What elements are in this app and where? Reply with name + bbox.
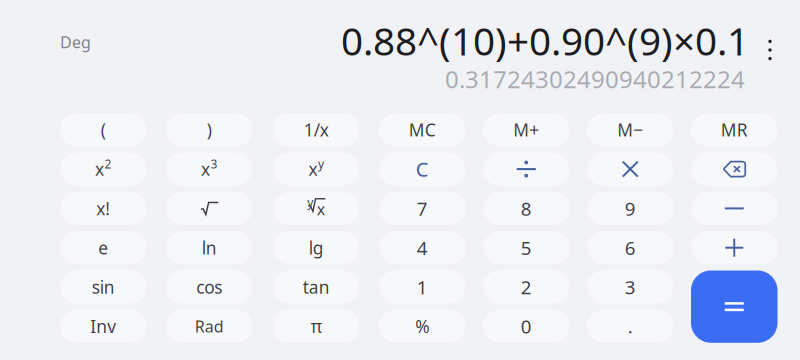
staticText: x!: [96, 197, 110, 220]
button[interactable]: tan: [273, 270, 359, 303]
staticText: MC: [409, 118, 436, 141]
button[interactable]: Square root: [166, 192, 252, 225]
staticText: .: [628, 314, 633, 339]
staticText: e: [98, 236, 108, 259]
button[interactable]: C: [379, 153, 465, 186]
button[interactable]: cos: [166, 270, 252, 303]
staticText: %: [415, 315, 429, 338]
button[interactable]: Nth root: [273, 192, 359, 225]
button[interactable]: More options: [759, 38, 781, 62]
staticText: C: [416, 156, 429, 182]
button[interactable]: Backspace: [691, 153, 777, 186]
staticText: 0: [521, 314, 532, 339]
button[interactable]: .: [587, 310, 673, 343]
button[interactable]: Multiply: [587, 153, 673, 186]
staticText: Rad: [195, 316, 224, 337]
button[interactable]: 7: [379, 192, 465, 225]
staticText: x: [309, 158, 318, 181]
staticText: x: [95, 158, 104, 181]
button[interactable]: 4: [379, 231, 465, 264]
button[interactable]: x!: [60, 192, 146, 225]
button[interactable]: 1/x: [273, 113, 359, 146]
button[interactable]: Minus: [691, 192, 777, 225]
staticText: 5: [521, 235, 532, 260]
button[interactable]: lg: [273, 231, 359, 264]
staticText: 1: [417, 275, 428, 299]
button[interactable]: 9: [587, 192, 673, 225]
staticText: 4: [417, 235, 428, 260]
staticText: Deg: [60, 31, 91, 53]
button[interactable]: x: [166, 153, 252, 186]
staticText: M+: [513, 118, 539, 141]
staticText: 3: [210, 156, 217, 172]
button[interactable]: Rad: [166, 310, 252, 343]
button[interactable]: Equals: [691, 270, 777, 343]
button[interactable]: e: [60, 231, 146, 264]
staticText: y: [318, 156, 324, 172]
staticText: 0.31724302490940212224: [445, 63, 745, 95]
button[interactable]: MR: [691, 113, 777, 146]
button[interactable]: Plus: [691, 231, 777, 264]
staticText: 3: [625, 275, 636, 299]
staticText: 6: [625, 235, 636, 260]
staticText: tan: [303, 275, 330, 298]
button[interactable]: (: [60, 113, 146, 146]
button[interactable]: M+: [483, 113, 569, 146]
button[interactable]: 5: [483, 231, 569, 264]
staticText: 1/x: [304, 118, 329, 141]
button[interactable]: M−: [587, 113, 673, 146]
button[interactable]: 6: [587, 231, 673, 264]
button[interactable]: π: [273, 310, 359, 343]
staticText: lg: [309, 236, 324, 259]
button[interactable]: 2: [483, 270, 569, 303]
staticText: 9: [625, 196, 636, 221]
staticText: 8: [521, 196, 532, 221]
button[interactable]: x: [60, 153, 146, 186]
staticText: sin: [92, 275, 115, 298]
staticText: x: [317, 198, 325, 220]
button[interactable]: ): [166, 113, 252, 146]
staticText: π: [311, 315, 322, 338]
staticText: y: [307, 194, 313, 210]
button[interactable]: 8: [483, 192, 569, 225]
button[interactable]: ln: [166, 231, 252, 264]
staticText: M−: [617, 118, 643, 141]
staticText: 7: [417, 196, 428, 221]
button[interactable]: MC: [379, 113, 465, 146]
staticText: x: [201, 158, 210, 181]
button[interactable]: sin: [60, 270, 146, 303]
button[interactable]: Divide: [483, 153, 569, 186]
staticText: ): [207, 118, 212, 141]
staticText: 2: [104, 156, 111, 172]
button[interactable]: 0: [483, 310, 569, 343]
staticText: 0.88^(10)+0.90^(9)×0.1: [341, 15, 749, 66]
button[interactable]: Inv: [60, 310, 146, 343]
button[interactable]: %: [379, 310, 465, 343]
staticText: cos: [196, 275, 222, 298]
staticText: 2: [521, 275, 532, 299]
staticText: ln: [202, 236, 217, 259]
button[interactable]: 3: [587, 270, 673, 303]
staticText: MR: [721, 118, 748, 141]
button[interactable]: x: [273, 153, 359, 186]
button[interactable]: Deg: [60, 32, 100, 52]
button[interactable]: 1: [379, 270, 465, 303]
staticText: Inv: [90, 315, 116, 338]
staticText: (: [101, 118, 106, 141]
